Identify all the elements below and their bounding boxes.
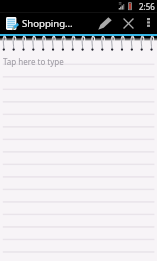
button[interactable]: Tap here to type	[3, 56, 64, 67]
button[interactable]: More options	[139, 12, 157, 34]
button[interactable]: Edit	[93, 12, 117, 34]
staticText: 2:56	[139, 1, 155, 12]
button[interactable]: Close	[117, 12, 139, 34]
staticText: Shopping…	[22, 17, 73, 30]
button[interactable]: App icon	[0, 12, 23, 34]
